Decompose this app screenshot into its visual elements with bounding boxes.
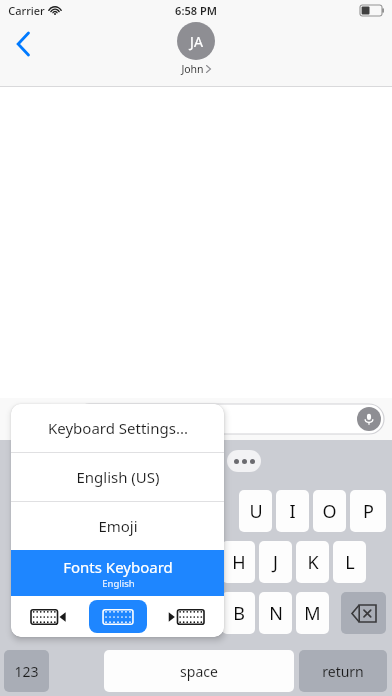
staticText: Fonts Keyboard bbox=[63, 557, 173, 577]
button[interactable]: JA bbox=[177, 22, 215, 76]
button[interactable]: H bbox=[222, 541, 255, 583]
button[interactable]: K bbox=[296, 541, 329, 583]
staticText: O bbox=[322, 499, 337, 524]
staticText: space bbox=[180, 662, 218, 681]
staticText: Keyboard Settings... bbox=[48, 418, 188, 438]
button[interactable]: N bbox=[259, 592, 292, 634]
staticText: N bbox=[269, 601, 283, 626]
staticText: Carrier bbox=[8, 3, 45, 18]
button[interactable]: return bbox=[299, 650, 387, 692]
staticText: Emoji bbox=[98, 516, 138, 536]
button[interactable]: Current keyboard bbox=[89, 600, 147, 633]
button[interactable]: M bbox=[296, 592, 329, 634]
button[interactable]: Back bbox=[4, 24, 44, 64]
staticText: I bbox=[289, 499, 296, 524]
staticText: return bbox=[322, 662, 364, 681]
button[interactable]: U bbox=[239, 490, 272, 532]
button[interactable]: J bbox=[259, 541, 292, 583]
staticText: B bbox=[233, 601, 245, 626]
button[interactable]: L bbox=[333, 541, 366, 583]
staticText: K bbox=[307, 550, 319, 575]
button[interactable]: P bbox=[350, 490, 386, 532]
staticText: JA bbox=[190, 32, 203, 51]
staticText: J bbox=[273, 550, 278, 575]
button[interactable]: Emoji bbox=[11, 502, 224, 550]
staticText: 6:58 PM bbox=[175, 3, 217, 18]
staticText: P bbox=[363, 499, 374, 524]
button[interactable]: Dictate bbox=[357, 407, 381, 431]
button[interactable]: space bbox=[104, 650, 294, 692]
staticText: English bbox=[102, 577, 135, 590]
staticText: L bbox=[345, 550, 355, 575]
button[interactable]: 123 bbox=[4, 650, 49, 692]
button[interactable]: Keyboard Settings... bbox=[11, 404, 224, 452]
button[interactable]: Backspace bbox=[341, 592, 386, 634]
staticText: M bbox=[304, 601, 321, 626]
button[interactable]: English (US) bbox=[11, 453, 224, 501]
staticText: English (US) bbox=[76, 467, 160, 487]
staticText: H bbox=[232, 550, 246, 575]
staticText: 123 bbox=[14, 662, 39, 681]
button[interactable]: Previous keyboard bbox=[19, 600, 77, 633]
button[interactable] bbox=[74, 404, 384, 434]
button[interactable]: O bbox=[313, 490, 346, 532]
button[interactable]: I bbox=[276, 490, 309, 532]
button[interactable]: Fonts Keyboard bbox=[11, 550, 224, 596]
staticText: John bbox=[181, 62, 204, 76]
button[interactable]: Next keyboard bbox=[158, 600, 216, 633]
staticText: U bbox=[249, 499, 263, 524]
button[interactable]: B bbox=[222, 592, 255, 634]
